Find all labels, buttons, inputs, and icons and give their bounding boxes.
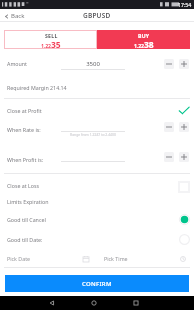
staticText: Good till Date: xyxy=(7,236,43,243)
staticText: SELL xyxy=(45,32,58,39)
staticText: When Rate is: xyxy=(7,126,41,133)
staticText: BUY xyxy=(138,32,150,39)
button[interactable]: CONFIRM xyxy=(5,275,189,292)
other: Pick Date xyxy=(83,256,89,262)
button[interactable]: Pick Time xyxy=(104,252,186,265)
staticText: Close at Loss xyxy=(7,182,40,189)
button[interactable]: Increase xyxy=(179,122,189,132)
staticText: Close at Profit xyxy=(7,107,42,114)
button[interactable]: Back xyxy=(4,12,25,20)
staticText: 1.22 xyxy=(134,42,144,49)
staticText: GBPUSD xyxy=(83,11,111,20)
staticText: Limits Expiration xyxy=(7,198,49,205)
staticText: Pick Time xyxy=(104,255,128,262)
staticText: CONFIRM xyxy=(82,280,112,288)
staticText: Range from 1.2247 to 2.4400 xyxy=(53,132,133,137)
button[interactable]: Increase xyxy=(179,59,189,69)
button[interactable]: Close at Loss xyxy=(7,179,190,192)
staticText: Pick Date xyxy=(7,255,31,262)
button[interactable]: Good till Date: xyxy=(5,233,190,246)
button[interactable]: Recents xyxy=(129,296,142,309)
button[interactable]: Pick Date xyxy=(7,252,89,265)
staticText: 38 xyxy=(144,39,154,49)
other: Pick Time xyxy=(180,256,186,262)
button[interactable]: Decrease xyxy=(164,122,174,132)
staticText: 35 xyxy=(51,39,61,49)
staticText: Good till Cancel xyxy=(7,216,46,223)
staticText: Amount xyxy=(7,60,28,67)
button[interactable]: BUY xyxy=(97,30,190,49)
staticText: When Profit is: xyxy=(7,156,44,163)
staticText: 3500 xyxy=(61,60,125,68)
button[interactable]: SELL xyxy=(4,30,97,49)
staticText: 17:54 xyxy=(178,1,192,8)
button[interactable]: Increase xyxy=(179,152,189,162)
staticText: Required Margin 214.14 xyxy=(7,84,67,91)
staticText: Back xyxy=(11,12,25,20)
staticText: 1.22 xyxy=(41,42,51,49)
button[interactable]: Back xyxy=(45,296,58,309)
button[interactable]: Good till Cancel xyxy=(5,213,190,226)
button[interactable]: Decrease xyxy=(164,59,174,69)
button[interactable]: Home xyxy=(87,296,100,309)
button[interactable]: Decrease xyxy=(164,152,174,162)
button[interactable]: Close at Profit xyxy=(7,104,190,117)
